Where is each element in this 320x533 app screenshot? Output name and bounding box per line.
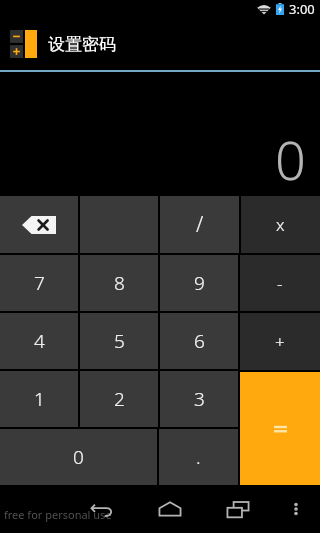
button[interactable]: 9 <box>160 255 238 311</box>
button[interactable]: Back <box>68 485 136 533</box>
button[interactable]: 7 <box>0 255 78 311</box>
button[interactable]: x <box>241 196 320 253</box>
button[interactable]: Backspace <box>0 196 78 253</box>
staticText: . <box>196 444 201 470</box>
button[interactable]: 8 <box>80 255 158 311</box>
button[interactable]: 1 <box>0 371 78 427</box>
staticText: 4 <box>34 328 45 354</box>
button[interactable]: . <box>159 429 238 485</box>
button[interactable]: 0 <box>0 429 157 485</box>
staticText: 0 <box>275 122 306 196</box>
staticText: 2 <box>114 386 125 412</box>
button[interactable]: Calculator app icon <box>10 29 37 59</box>
button[interactable]: Home <box>136 485 204 533</box>
staticText: 0 <box>73 444 84 470</box>
staticText: 8 <box>114 270 125 296</box>
button[interactable]: Equals <box>240 372 320 485</box>
button[interactable]: 5 <box>80 313 158 369</box>
staticText: 3:00 <box>289 0 315 18</box>
staticText: 5 <box>114 328 125 354</box>
button[interactable]: / <box>160 196 239 253</box>
staticText: 6 <box>194 328 205 354</box>
button[interactable]: 2 <box>80 371 158 427</box>
staticText: / <box>196 210 204 239</box>
staticText: x <box>276 213 285 236</box>
staticText: 1 <box>34 386 45 412</box>
staticText: 3 <box>194 386 205 412</box>
button[interactable]: + <box>240 313 320 370</box>
button[interactable]: 4 <box>0 313 78 369</box>
button[interactable]: Recent apps <box>204 485 272 533</box>
button[interactable]: 3 <box>160 371 238 427</box>
button[interactable]: More options <box>272 485 320 533</box>
button[interactable]: 6 <box>160 313 238 369</box>
staticText: 设置密码 <box>48 34 116 55</box>
button[interactable]: - <box>240 255 320 311</box>
staticText: 9 <box>194 270 205 296</box>
staticText: + <box>275 330 285 353</box>
staticText: 7 <box>34 270 45 296</box>
staticText: free for personal use <box>4 507 112 522</box>
staticText: - <box>277 272 283 295</box>
